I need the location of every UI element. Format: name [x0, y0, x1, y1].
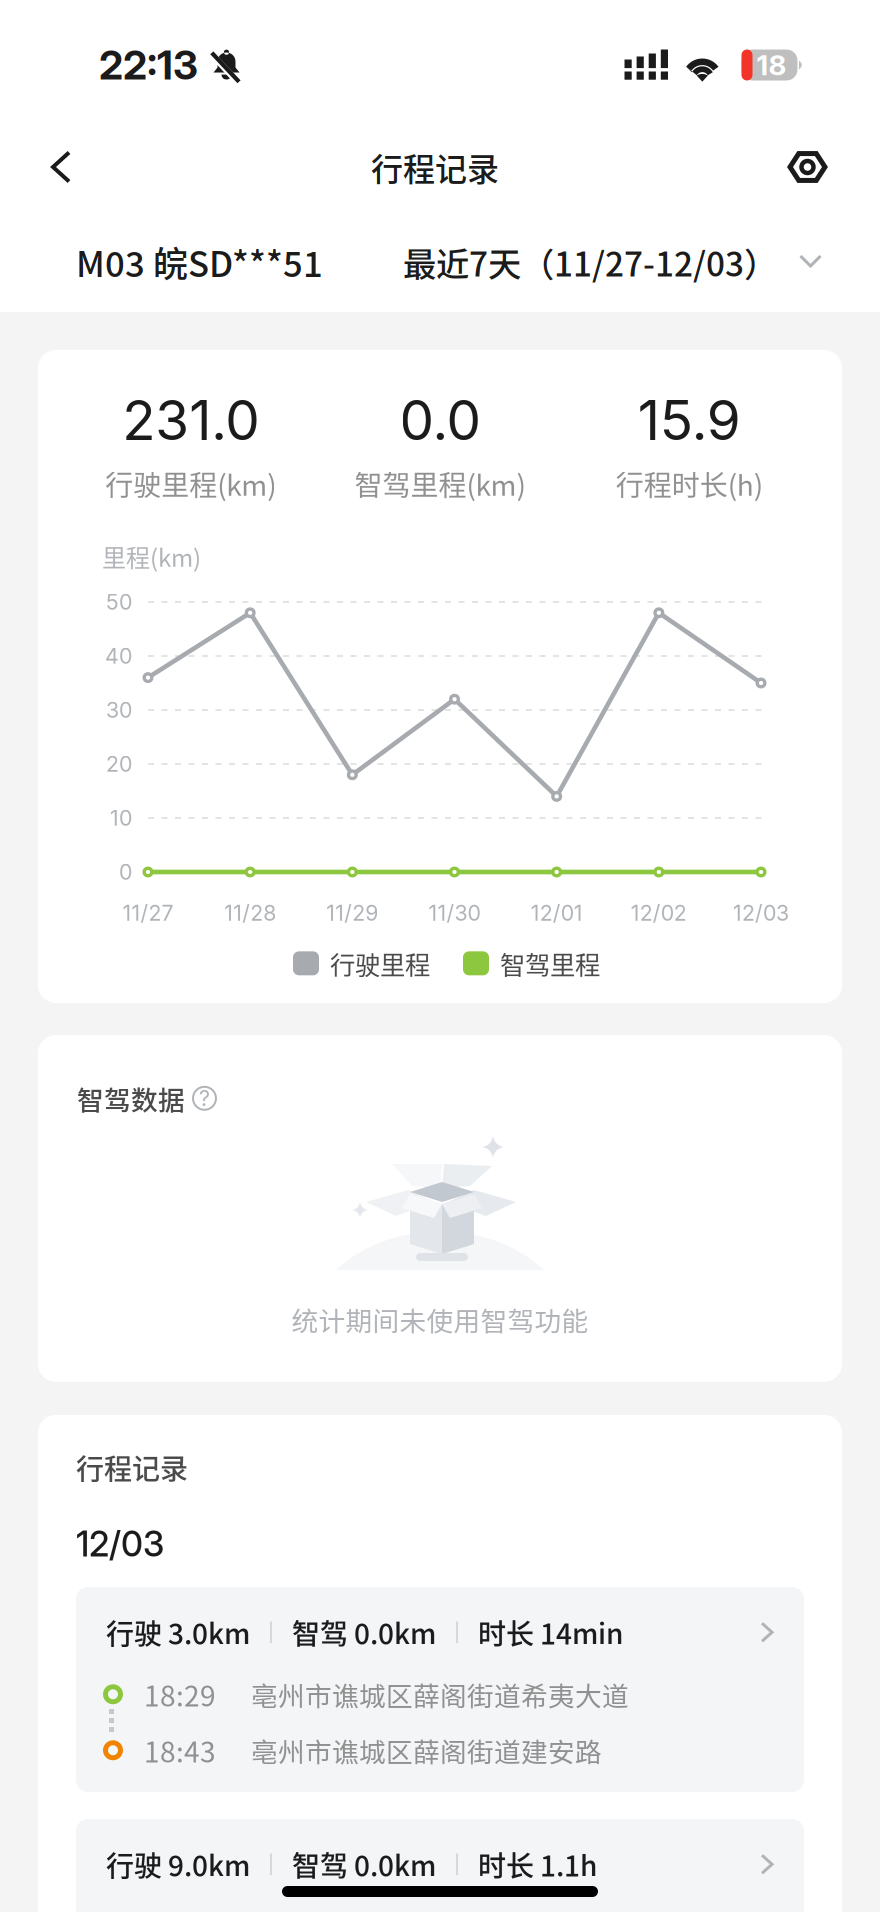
staticText: 12/02: [631, 900, 687, 926]
staticText: 11/30: [428, 900, 480, 926]
staticText: 智驾数据: [77, 1079, 185, 1118]
button[interactable]: 行驶 9.0km: [76, 1819, 804, 1912]
staticText: 30: [106, 697, 132, 723]
staticText: 18:29: [144, 1674, 216, 1714]
staticText: 50: [106, 589, 132, 615]
staticText: 智驾里程: [500, 945, 600, 982]
button[interactable]: 行驶 3.0km: [76, 1587, 804, 1792]
staticText: 亳州市谯城区薛阁街道希夷大道: [251, 1675, 629, 1714]
button[interactable]: Settings: [772, 129, 843, 204]
staticText: 行驶 9.0km: [106, 1844, 250, 1884]
staticText: 智驾 0.0km: [292, 1612, 436, 1652]
button[interactable]: M03 皖SD***51: [76, 223, 323, 301]
staticText: 智驾 0.0km: [292, 1844, 436, 1884]
staticText: 行程记录: [371, 144, 499, 190]
staticText: 行驶里程(km): [105, 463, 276, 504]
staticText: 11/28: [224, 900, 276, 926]
staticText: 最近7天（11/27-12/03）: [403, 238, 777, 286]
staticText: 18:43: [144, 1730, 216, 1770]
staticText: M03 皖SD***51: [76, 237, 323, 287]
staticText: 12/03: [76, 1523, 164, 1565]
staticText: 0: [119, 859, 132, 885]
staticText: 22:13: [99, 41, 198, 89]
staticText: 40: [105, 643, 132, 669]
staticText: 时长 1.1h: [478, 1844, 597, 1884]
staticText: 11/27: [122, 900, 173, 926]
button[interactable]: 最近7天（11/27-12/03）: [403, 224, 822, 300]
staticText: 18: [756, 48, 786, 82]
staticText: 行程时长(h): [616, 463, 763, 504]
staticText: 亳州市谯城区薛阁街道建安路: [251, 1731, 602, 1770]
staticText: 12/03: [733, 900, 789, 926]
staticText: 行程记录: [76, 1447, 188, 1487]
button[interactable]: Back: [27, 128, 95, 205]
staticText: ?: [199, 1085, 210, 1111]
staticText: 统计期间未使用智驾功能: [291, 1300, 588, 1339]
staticText: 12/01: [531, 900, 583, 926]
staticText: 行驶里程: [330, 945, 430, 982]
staticText: 里程(km): [102, 539, 201, 574]
staticText: 行驶 3.0km: [106, 1612, 250, 1652]
staticText: 10: [110, 805, 132, 831]
staticText: 231.0: [122, 387, 259, 453]
staticText: 15.9: [638, 387, 741, 453]
staticText: 时长 14min: [478, 1612, 623, 1652]
staticText: 20: [106, 751, 132, 777]
staticText: 0.0: [399, 387, 480, 453]
staticText: 智驾里程(km): [354, 463, 525, 504]
staticText: 11/29: [326, 900, 378, 926]
